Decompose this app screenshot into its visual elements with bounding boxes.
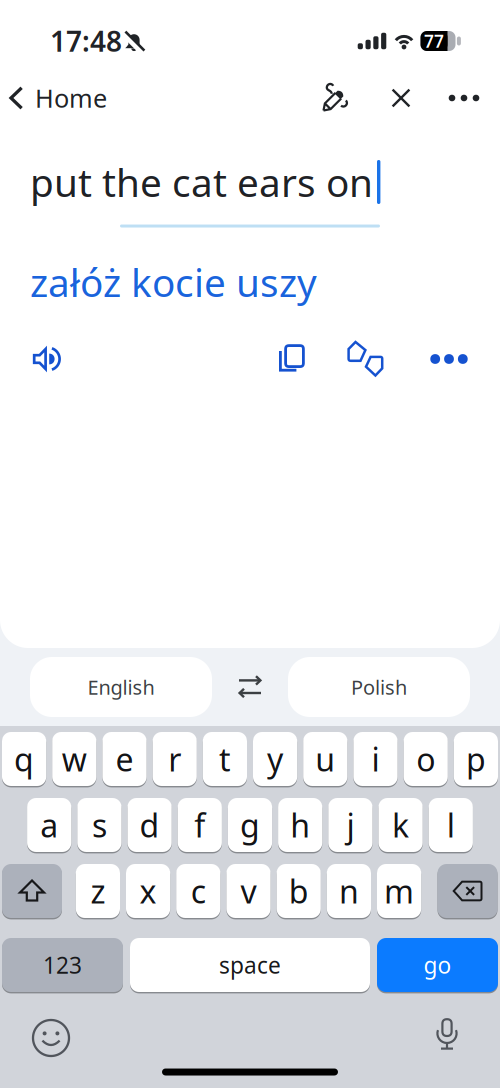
button[interactable]: Swap languages (228, 665, 272, 709)
button[interactable]: n (327, 864, 371, 918)
button[interactable]: l (429, 798, 473, 852)
staticText: d (140, 804, 160, 846)
button[interactable]: r (153, 732, 197, 786)
staticText: m (384, 870, 414, 912)
staticText: i (371, 738, 379, 780)
staticText: q (14, 738, 34, 780)
staticText: x (140, 870, 157, 912)
button[interactable]: x (126, 864, 170, 918)
staticText: v (240, 870, 256, 912)
staticText: z (90, 870, 105, 912)
button[interactable]: Numbers (2, 938, 123, 992)
staticText: Home (35, 81, 107, 115)
button[interactable]: u (303, 732, 347, 786)
button[interactable]: z (76, 864, 120, 918)
button[interactable]: q (2, 732, 46, 786)
button[interactable]: c (176, 864, 220, 918)
button[interactable]: i (353, 732, 398, 786)
staticText: w (62, 738, 87, 780)
staticText: u (315, 738, 335, 780)
staticText: l (447, 804, 455, 846)
staticText: załóż kocie uszy (30, 256, 317, 308)
button[interactable]: s (77, 798, 121, 852)
button[interactable]: d (127, 798, 172, 852)
staticText: n (339, 870, 359, 912)
button[interactable]: b (277, 864, 321, 918)
button[interactable]: o (404, 732, 448, 786)
button[interactable]: Rate translation (343, 337, 389, 381)
button[interactable]: t (203, 732, 247, 786)
staticText: r (168, 738, 181, 780)
button[interactable]: v (226, 864, 271, 918)
button[interactable]: Listen (25, 337, 69, 381)
button[interactable]: m (377, 864, 421, 918)
button[interactable]: f (178, 798, 222, 852)
staticText: put the cat ears on (30, 156, 373, 208)
staticText: 77 (424, 29, 444, 52)
button[interactable]: Delete (437, 864, 497, 918)
button[interactable]: h (278, 798, 322, 852)
button[interactable]: Back (9, 78, 107, 118)
staticText: j (346, 804, 354, 846)
button[interactable]: Copy translation (270, 337, 314, 381)
staticText: b (289, 870, 309, 912)
staticText: English (87, 674, 154, 700)
button[interactable]: Handwriting input (312, 76, 356, 120)
staticText: space (219, 950, 281, 980)
button[interactable]: English (30, 657, 212, 717)
staticText: go (423, 950, 451, 980)
staticText: s (92, 804, 107, 846)
staticText: c (191, 870, 206, 912)
button[interactable]: y (253, 732, 297, 786)
staticText: t (219, 738, 231, 780)
button[interactable]: j (328, 798, 372, 852)
staticText: p (466, 738, 486, 780)
button[interactable]: e (102, 732, 147, 786)
staticText: k (392, 804, 409, 846)
button[interactable]: Emoji (29, 1016, 73, 1060)
button[interactable]: Polish (288, 657, 470, 717)
button[interactable]: Shift (2, 864, 62, 918)
button[interactable]: More options (444, 78, 484, 118)
staticText: o (416, 738, 435, 780)
button[interactable]: k (378, 798, 423, 852)
staticText: 17:48 (50, 22, 122, 60)
staticText: g (240, 804, 260, 846)
staticText: e (115, 738, 133, 780)
button[interactable]: p (454, 732, 498, 786)
button[interactable]: a (27, 798, 71, 852)
staticText: Polish (351, 674, 407, 700)
button[interactable]: space (130, 938, 370, 992)
button[interactable]: Close (381, 78, 421, 118)
staticText: y (267, 738, 283, 780)
staticText: 123 (43, 950, 82, 980)
staticText: f (194, 804, 205, 846)
staticText: a (40, 804, 58, 846)
staticText: h (290, 804, 310, 846)
button[interactable]: Dictate (425, 1012, 469, 1056)
button[interactable]: w (52, 732, 96, 786)
button[interactable]: go (377, 938, 498, 992)
button[interactable]: More translation options (427, 337, 471, 381)
button[interactable]: g (228, 798, 272, 852)
